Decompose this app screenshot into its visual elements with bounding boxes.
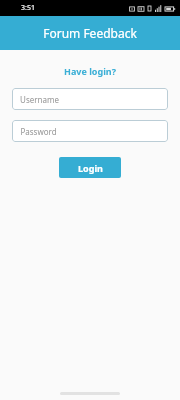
staticText: 3:51 — [21, 3, 35, 13]
staticText: Have login? — [64, 65, 116, 77]
button[interactable]: Username — [12, 88, 168, 110]
button[interactable]: Login — [59, 157, 121, 178]
staticText: Forum Feedback — [43, 25, 137, 41]
staticText: Login — [78, 162, 103, 174]
staticText: Password — [20, 126, 57, 137]
button[interactable]: Password — [12, 120, 168, 142]
staticText: Username — [20, 94, 59, 105]
